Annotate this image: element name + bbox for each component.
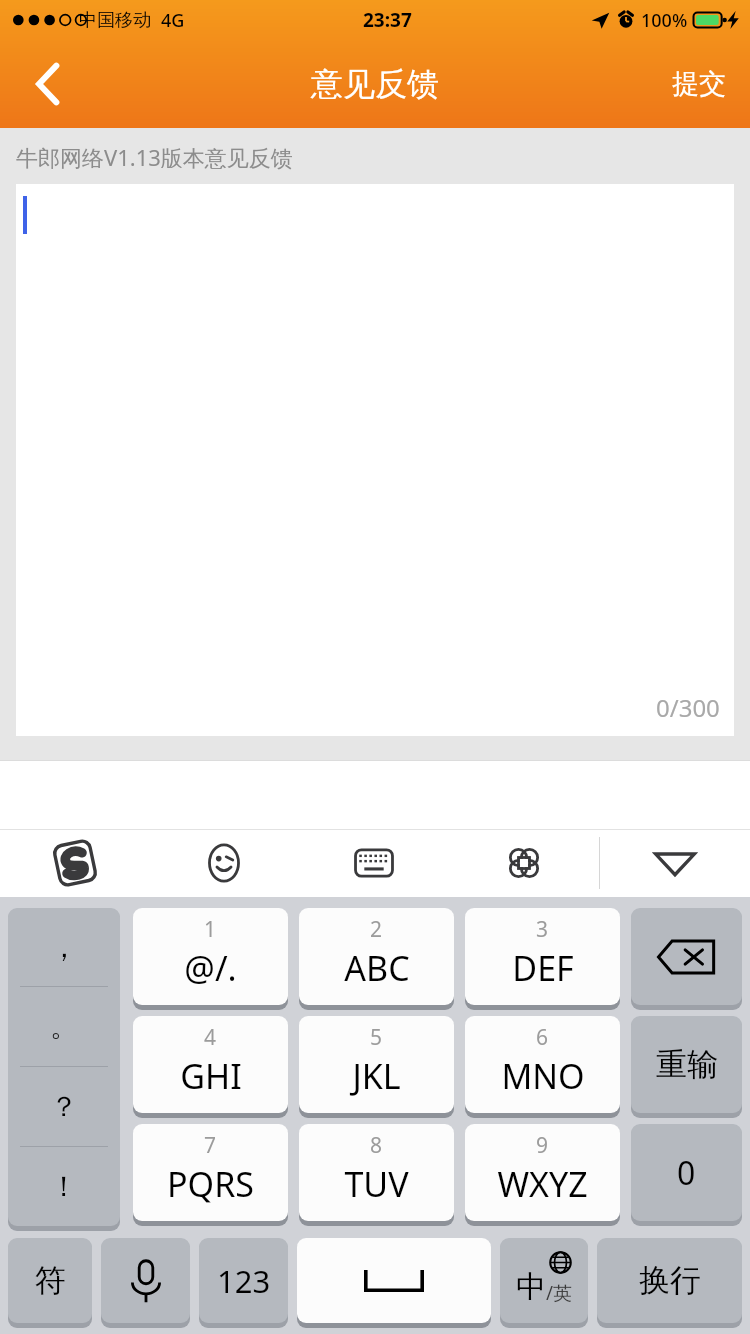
staticText: 23:37 (363, 7, 412, 33)
button[interactable]: 9 (465, 1124, 620, 1221)
button[interactable]: 5 (299, 1016, 454, 1113)
button[interactable]: Sogou input method (0, 829, 149, 897)
staticText: 4G (161, 8, 185, 33)
button[interactable]: Keyboard settings (299, 829, 449, 897)
staticText: DEF (512, 945, 574, 991)
staticText: TUV (344, 1161, 409, 1207)
staticText: 4 (204, 1023, 217, 1052)
button[interactable]: 重输 (631, 1016, 742, 1113)
button[interactable]: 0/300 (16, 184, 734, 736)
button[interactable]: Switch Chinese English (500, 1238, 588, 1323)
staticText: 5 (370, 1023, 383, 1052)
staticText: 3 (536, 915, 549, 944)
staticText: 重输 (656, 1045, 718, 1084)
staticText: 符 (35, 1261, 66, 1300)
staticText: 0/300 (656, 691, 720, 724)
staticText: 123 (217, 1260, 271, 1302)
staticText: 换行 (639, 1261, 701, 1300)
staticText: 7 (204, 1131, 217, 1160)
button[interactable]: 3 (465, 908, 620, 1005)
staticText: 中 (516, 1268, 546, 1306)
staticText: ！ (50, 1169, 78, 1204)
button[interactable]: 6 (465, 1016, 620, 1113)
staticText: MNO (501, 1053, 585, 1099)
staticText: ABC (344, 945, 410, 991)
staticText: WXYZ (497, 1161, 588, 1207)
staticText: 牛郎网络V1.13版本意见反馈 (16, 142, 293, 172)
staticText: 6 (536, 1023, 549, 1052)
button[interactable]: Voice input (101, 1238, 190, 1323)
staticText: 。 (50, 1009, 78, 1044)
button[interactable]: 换行 (597, 1238, 742, 1323)
staticText: ？ (50, 1089, 78, 1124)
staticText: PQRS (167, 1161, 254, 1207)
staticText: 9 (536, 1131, 549, 1160)
staticText: /英 (546, 1280, 573, 1306)
staticText: 1 (204, 915, 217, 944)
button[interactable]: 提交 (648, 40, 750, 128)
staticText: 100% (641, 8, 688, 33)
staticText: 0 (677, 1151, 696, 1195)
button[interactable]: 7 (133, 1124, 288, 1221)
staticText: 意见反馈 (311, 64, 439, 104)
button[interactable]: Emoji (149, 829, 299, 897)
staticText: 中国移动 (79, 9, 151, 32)
button[interactable]: 8 (299, 1124, 454, 1221)
button[interactable]: Hide keyboard (600, 829, 750, 897)
button[interactable]: 符 (8, 1238, 92, 1323)
button[interactable]: Space (297, 1238, 491, 1323)
button[interactable]: Delete (631, 908, 742, 1005)
staticText: GHI (180, 1053, 242, 1099)
button[interactable]: ， (8, 908, 120, 1226)
staticText: JKL (352, 1053, 401, 1099)
staticText: 提交 (672, 67, 726, 101)
staticText: 2 (370, 915, 383, 944)
button[interactable]: 2 (299, 908, 454, 1005)
button[interactable]: Back (0, 40, 96, 128)
button[interactable]: 4 (133, 1016, 288, 1113)
button[interactable]: 0 (631, 1124, 742, 1221)
button[interactable]: 123 (199, 1238, 288, 1323)
staticText: @/. (184, 945, 237, 991)
button[interactable]: More tools (449, 829, 599, 897)
button[interactable]: 1 (133, 908, 288, 1005)
staticText: 8 (370, 1131, 383, 1160)
staticText: ， (50, 930, 78, 965)
